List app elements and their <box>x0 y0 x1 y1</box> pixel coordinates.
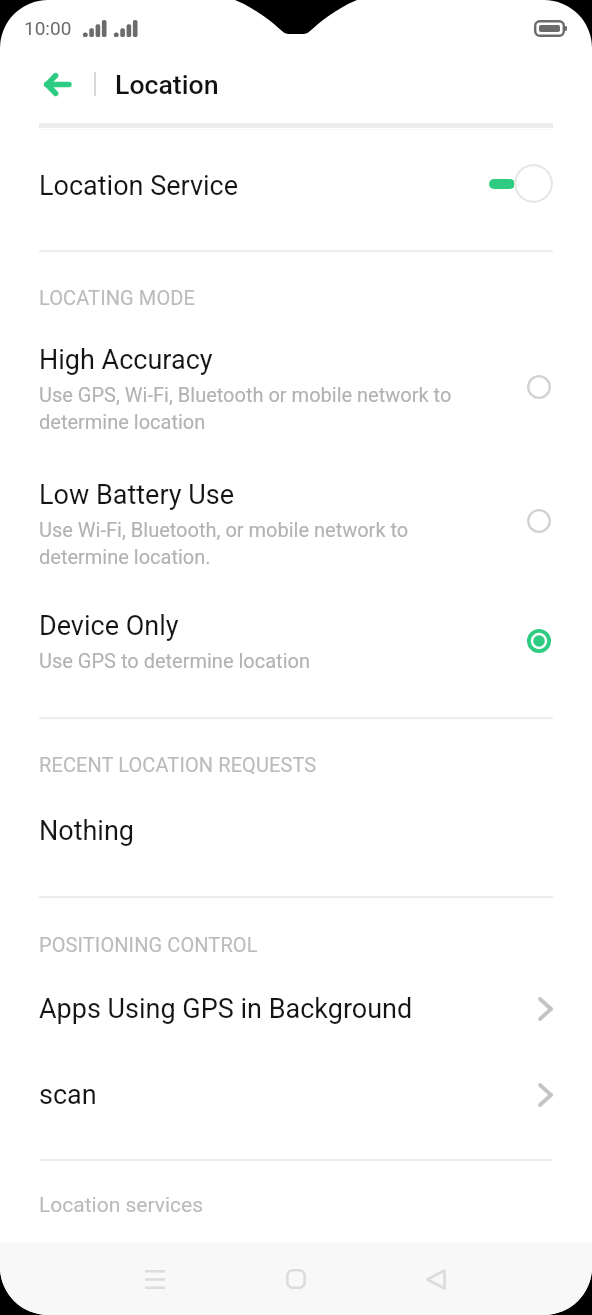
button[interactable]: scan <box>0 1054 592 1140</box>
staticText: 10:00 <box>24 17 72 39</box>
staticText: RECENT LOCATION REQUESTS <box>39 753 317 776</box>
staticText: Location <box>115 69 219 100</box>
button[interactable]: Back <box>402 1245 470 1313</box>
staticText: Low Battery Use <box>39 479 235 511</box>
button[interactable]: Apps Using GPS in Background <box>0 968 592 1054</box>
staticText: LOCATING MODE <box>39 286 195 309</box>
staticText: Apps Using GPS in Background <box>39 993 413 1025</box>
staticText: Device Only <box>39 610 179 642</box>
button[interactable]: Nothing <box>0 790 592 856</box>
staticText: Location Service <box>39 170 238 202</box>
staticText: Use GPS to determine location <box>39 649 310 672</box>
staticText: Nothing <box>39 815 135 847</box>
button[interactable]: High Accuracy <box>0 344 592 464</box>
staticText: High Accuracy <box>39 344 213 376</box>
button[interactable]: Back <box>33 60 81 108</box>
staticText: scan <box>39 1079 97 1111</box>
button[interactable]: Location Service <box>0 132 592 244</box>
staticText: Use Wi-Fi, Bluetooth, or mobile network … <box>39 518 409 569</box>
button[interactable]: Recent apps <box>121 1245 189 1313</box>
button[interactable]: Device Only <box>0 610 592 696</box>
staticText: POSITIONING CONTROL <box>39 933 258 956</box>
button[interactable]: Home <box>262 1245 330 1313</box>
staticText: Location services <box>39 1193 203 1218</box>
staticText: Use GPS, Wi-Fi, Bluetooth or mobile netw… <box>39 383 452 434</box>
button[interactable]: Low Battery Use <box>0 479 592 599</box>
